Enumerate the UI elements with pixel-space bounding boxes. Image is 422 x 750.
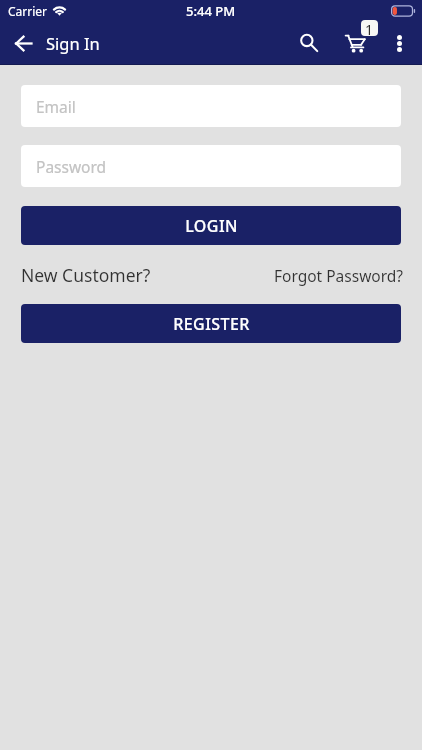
staticText: Password: [36, 156, 107, 177]
button[interactable]: Shopping cart: [345, 16, 385, 56]
button[interactable]: More options: [383, 27, 415, 59]
button[interactable]: Email: [21, 85, 401, 127]
staticText: Carrier: [8, 3, 48, 19]
button[interactable]: LOGIN: [21, 206, 401, 245]
button[interactable]: REGISTER: [21, 304, 401, 343]
staticText: 5:44 PM: [186, 2, 236, 20]
staticText: 1: [365, 20, 374, 36]
button[interactable]: Password: [21, 145, 401, 187]
staticText: REGISTER: [173, 313, 250, 335]
button[interactable]: Forgot Password?: [274, 265, 404, 286]
button[interactable]: Search: [289, 23, 329, 63]
staticText: Sign In: [46, 32, 100, 54]
button[interactable]: Back: [3, 23, 43, 63]
staticText: LOGIN: [185, 215, 238, 237]
button[interactable]: New Customer?: [21, 263, 151, 287]
staticText: Email: [36, 96, 76, 117]
